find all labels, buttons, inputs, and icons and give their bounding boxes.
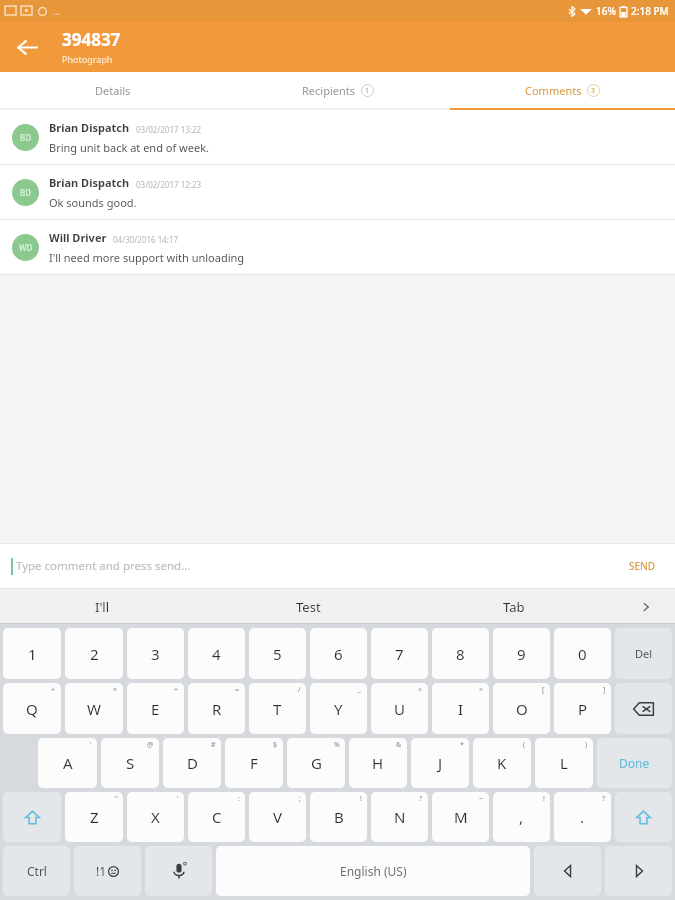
staticText: T bbox=[273, 699, 282, 719]
button[interactable]: A bbox=[38, 738, 97, 788]
staticText: Ctrl bbox=[27, 863, 47, 879]
staticText: O bbox=[516, 699, 528, 719]
staticText: !1 bbox=[96, 863, 107, 879]
button[interactable]: 2 bbox=[65, 628, 123, 679]
button[interactable]: K bbox=[473, 738, 531, 788]
button[interactable]: P bbox=[554, 683, 611, 734]
button[interactable]: Backspace bbox=[615, 683, 672, 734]
button[interactable]: M bbox=[432, 792, 489, 842]
button[interactable]: . bbox=[554, 792, 611, 842]
button[interactable]: , bbox=[493, 792, 550, 842]
button[interactable]: Move cursor left bbox=[534, 846, 601, 896]
staticText: ÷ bbox=[174, 685, 179, 695]
button[interactable]: O bbox=[493, 683, 550, 734]
button[interactable]: X bbox=[127, 792, 184, 842]
button[interactable]: I bbox=[432, 683, 489, 734]
button[interactable]: 5 bbox=[249, 628, 306, 679]
button[interactable]: Y bbox=[310, 683, 367, 734]
button[interactable]: Z bbox=[65, 792, 123, 842]
staticText: # bbox=[211, 740, 216, 750]
button[interactable]: 3 bbox=[127, 628, 184, 679]
staticText: < bbox=[418, 685, 423, 695]
button[interactable]: Q bbox=[3, 683, 61, 734]
staticText: 394837 bbox=[62, 28, 121, 51]
button[interactable]: Tab bbox=[411, 589, 617, 624]
button[interactable]: BD bbox=[0, 110, 675, 165]
button[interactable]: 1 bbox=[3, 628, 61, 679]
button[interactable]: Comments bbox=[450, 72, 675, 108]
staticText: 2 bbox=[90, 644, 99, 664]
button[interactable]: G bbox=[287, 738, 345, 788]
staticText: / bbox=[298, 685, 301, 695]
button[interactable]: BD bbox=[0, 165, 675, 220]
staticText: Ok sounds good. bbox=[49, 195, 137, 210]
button[interactable]: E bbox=[127, 683, 184, 734]
button[interactable]: Recipients bbox=[225, 72, 450, 108]
button[interactable]: Del bbox=[615, 628, 672, 679]
button[interactable]: Details bbox=[0, 72, 225, 108]
staticText: $ bbox=[273, 740, 278, 750]
staticText: W bbox=[87, 699, 101, 719]
button[interactable]: Done bbox=[597, 738, 672, 788]
staticText: I'll need more support with unloading bbox=[49, 250, 245, 265]
staticText: Brian Dispatch bbox=[49, 175, 130, 190]
button[interactable]: SEND bbox=[624, 553, 661, 579]
staticText: M bbox=[454, 807, 468, 827]
staticText: @ bbox=[147, 740, 154, 750]
button[interactable]: WD bbox=[0, 220, 675, 275]
button[interactable]: 0 bbox=[554, 628, 611, 679]
button[interactable]: H bbox=[349, 738, 407, 788]
button[interactable]: 7 bbox=[371, 628, 428, 679]
button[interactable]: N bbox=[371, 792, 428, 842]
button[interactable]: F bbox=[225, 738, 283, 788]
button[interactable]: 9 bbox=[493, 628, 550, 679]
staticText: S bbox=[126, 753, 135, 773]
button[interactable]: B bbox=[310, 792, 367, 842]
staticText: ! bbox=[543, 794, 545, 804]
staticText: K bbox=[497, 753, 507, 773]
button[interactable]: More suggestions bbox=[617, 589, 675, 624]
button[interactable]: S bbox=[101, 738, 159, 788]
button[interactable]: D bbox=[163, 738, 221, 788]
staticText: 5 bbox=[273, 644, 282, 664]
staticText: I bbox=[458, 699, 464, 719]
button[interactable]: Ctrl bbox=[3, 846, 70, 896]
button[interactable]: Shift bbox=[3, 792, 61, 842]
staticText: 2:18 PM bbox=[631, 4, 669, 18]
button[interactable]: 8 bbox=[432, 628, 489, 679]
button[interactable]: English (US) bbox=[216, 846, 530, 896]
staticText: U bbox=[394, 699, 405, 719]
staticText: ? bbox=[602, 794, 606, 804]
button[interactable]: W bbox=[65, 683, 123, 734]
staticText: 0 bbox=[578, 644, 587, 664]
staticText: D bbox=[187, 753, 198, 773]
staticText: 6 bbox=[334, 644, 343, 664]
staticText: ... bbox=[53, 5, 61, 17]
staticText: % bbox=[334, 740, 340, 750]
button[interactable]: T bbox=[249, 683, 306, 734]
button[interactable]: Move cursor right bbox=[605, 846, 672, 896]
button[interactable]: 6 bbox=[310, 628, 367, 679]
button[interactable]: Voice input bbox=[145, 846, 212, 896]
staticText: 16% bbox=[596, 4, 616, 18]
button[interactable]: Shift bbox=[615, 792, 672, 842]
staticText: G bbox=[311, 753, 322, 773]
staticText: Comments bbox=[525, 83, 582, 98]
button[interactable]: Back bbox=[9, 29, 45, 65]
staticText: P bbox=[578, 699, 588, 719]
button[interactable]: C bbox=[188, 792, 245, 842]
button[interactable]: I'll bbox=[0, 589, 205, 624]
staticText: Photograph bbox=[62, 53, 113, 65]
button[interactable]: Symbols and emoji bbox=[74, 846, 141, 896]
button[interactable]: U bbox=[371, 683, 428, 734]
button[interactable]: R bbox=[188, 683, 245, 734]
staticText: J bbox=[438, 753, 443, 773]
button[interactable]: V bbox=[249, 792, 306, 842]
button[interactable]: 4 bbox=[188, 628, 245, 679]
staticText: 1 bbox=[365, 86, 370, 96]
button[interactable]: L bbox=[535, 738, 593, 788]
staticText: V bbox=[273, 807, 283, 827]
staticText: Done bbox=[619, 755, 650, 771]
button[interactable]: J bbox=[411, 738, 469, 788]
button[interactable]: Test bbox=[205, 589, 411, 624]
